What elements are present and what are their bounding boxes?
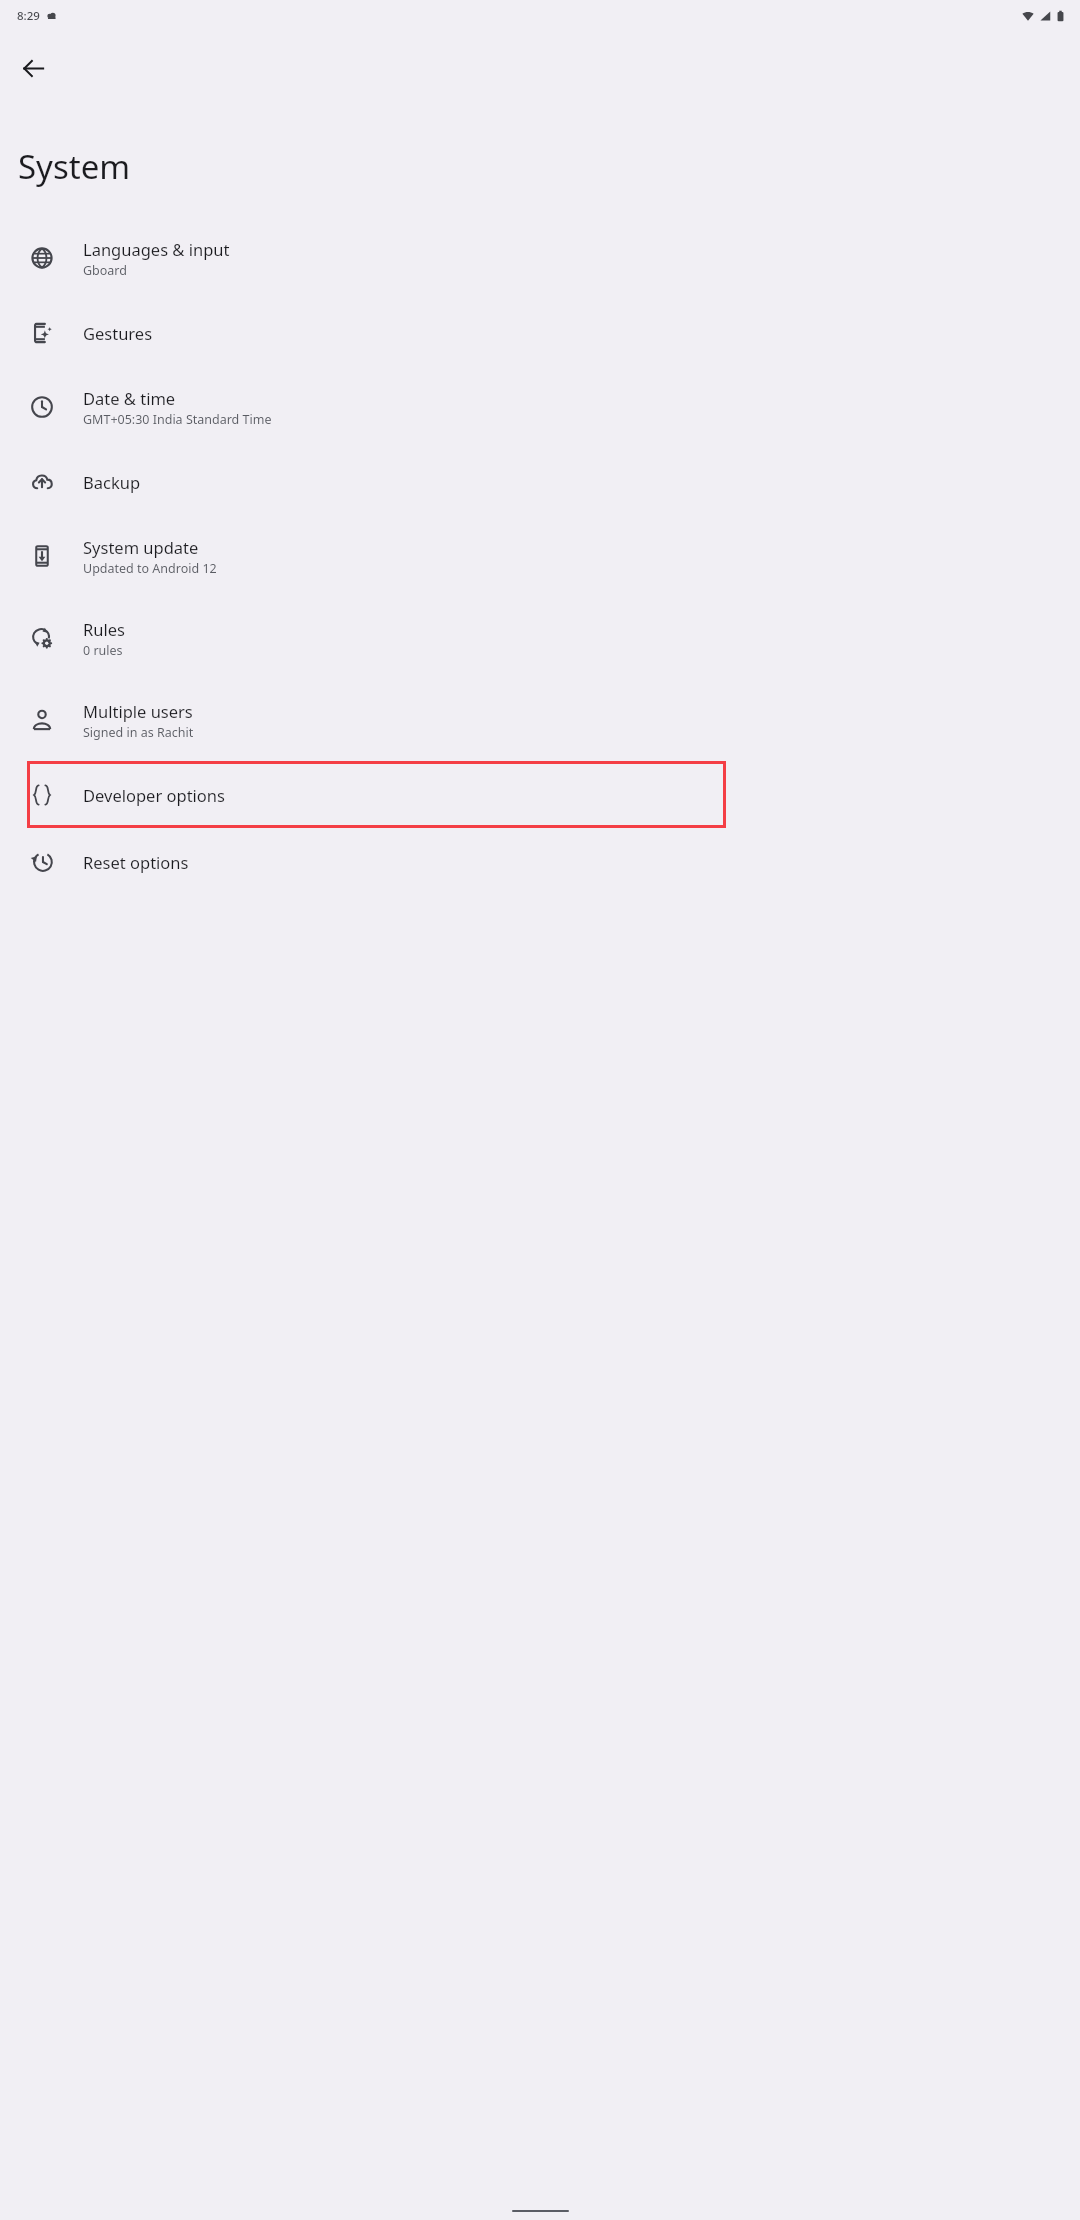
button[interactable]: Reset options bbox=[0, 828, 1080, 895]
staticText: 8:29 bbox=[17, 8, 40, 24]
staticText: Languages & input bbox=[83, 238, 230, 260]
staticText: Reset options bbox=[83, 851, 189, 873]
staticText: Multiple users bbox=[83, 700, 193, 722]
staticText: Gestures bbox=[83, 322, 153, 344]
staticText: Date & time bbox=[83, 387, 176, 409]
staticText: GMT+05:30 India Standard Time bbox=[83, 411, 272, 428]
staticText: 0 rules bbox=[83, 642, 123, 659]
staticText: Rules bbox=[83, 618, 125, 640]
staticText: System bbox=[18, 144, 131, 189]
button[interactable]: Multiple users bbox=[0, 679, 1080, 761]
button[interactable]: Backup bbox=[0, 448, 1080, 515]
staticText: Developer options bbox=[83, 784, 225, 806]
staticText: Updated to Android 12 bbox=[83, 560, 217, 577]
button[interactable]: Date & time bbox=[0, 366, 1080, 448]
staticText: Signed in as Rachit bbox=[83, 724, 194, 741]
button[interactable]: Languages & input bbox=[0, 217, 1080, 299]
button[interactable]: Developer options bbox=[0, 761, 1080, 828]
button[interactable]: System update bbox=[0, 515, 1080, 597]
button[interactable]: Back bbox=[9, 44, 57, 92]
button[interactable]: Rules bbox=[0, 597, 1080, 679]
staticText: System update bbox=[83, 536, 199, 558]
staticText: Gboard bbox=[83, 262, 127, 279]
button[interactable]: Gestures bbox=[0, 299, 1080, 366]
staticText: Backup bbox=[83, 471, 141, 493]
